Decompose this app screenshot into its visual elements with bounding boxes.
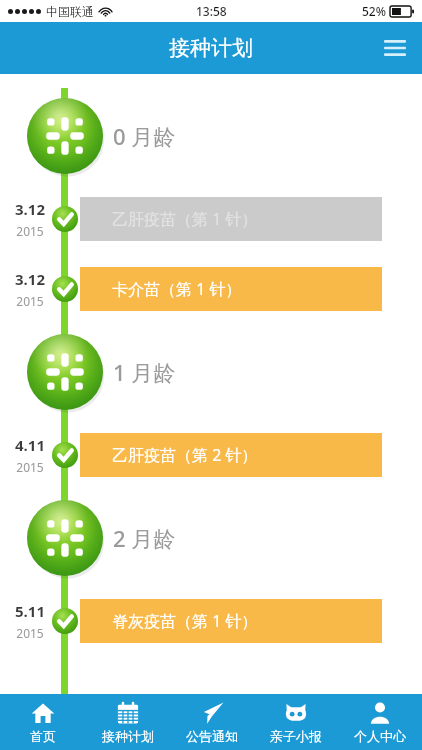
- staticText: 2015: [16, 223, 44, 239]
- staticText: 乙肝疫苗（第 1 针）: [112, 208, 258, 230]
- staticText: 亲子小报: [270, 728, 322, 744]
- staticText: 1 月龄: [113, 357, 176, 387]
- staticText: 公告通知: [186, 728, 238, 744]
- button[interactable]: 首页: [0, 694, 85, 750]
- staticText: 5.11: [15, 601, 45, 621]
- staticText: 2015: [16, 625, 44, 641]
- staticText: 卡介苗（第 1 针）: [112, 278, 242, 300]
- staticText: 2015: [16, 459, 44, 475]
- staticText: 3.12: [15, 199, 45, 219]
- staticText: 13:58: [196, 3, 227, 19]
- staticText: 脊灰疫苗（第 1 针）: [112, 610, 258, 632]
- button[interactable]: 个人中心: [338, 694, 422, 750]
- staticText: 2 月龄: [113, 523, 176, 553]
- staticText: 3.12: [15, 269, 45, 289]
- staticText: 2015: [16, 293, 44, 309]
- button[interactable]: 接种计划: [85, 694, 170, 750]
- staticText: 4.11: [15, 435, 45, 455]
- button[interactable]: 脊灰疫苗（第 1 针）: [80, 599, 382, 643]
- button[interactable]: 公告通知: [170, 694, 254, 750]
- staticText: 52%: [362, 3, 386, 19]
- staticText: 乙肝疫苗（第 2 针）: [112, 444, 258, 466]
- staticText: 接种计划: [169, 35, 253, 61]
- staticText: 个人中心: [354, 728, 406, 744]
- button[interactable]: 卡介苗（第 1 针）: [80, 267, 382, 311]
- button[interactable]: 亲子小报: [254, 694, 338, 750]
- staticText: 0 月龄: [113, 121, 176, 151]
- staticText: 中国联通: [46, 4, 94, 19]
- staticText: 接种计划: [102, 728, 154, 744]
- staticText: 首页: [30, 728, 56, 744]
- button[interactable]: 乙肝疫苗（第 2 针）: [80, 433, 382, 477]
- button[interactable]: Menu: [368, 22, 422, 74]
- button[interactable]: 乙肝疫苗（第 1 针）: [80, 197, 382, 241]
